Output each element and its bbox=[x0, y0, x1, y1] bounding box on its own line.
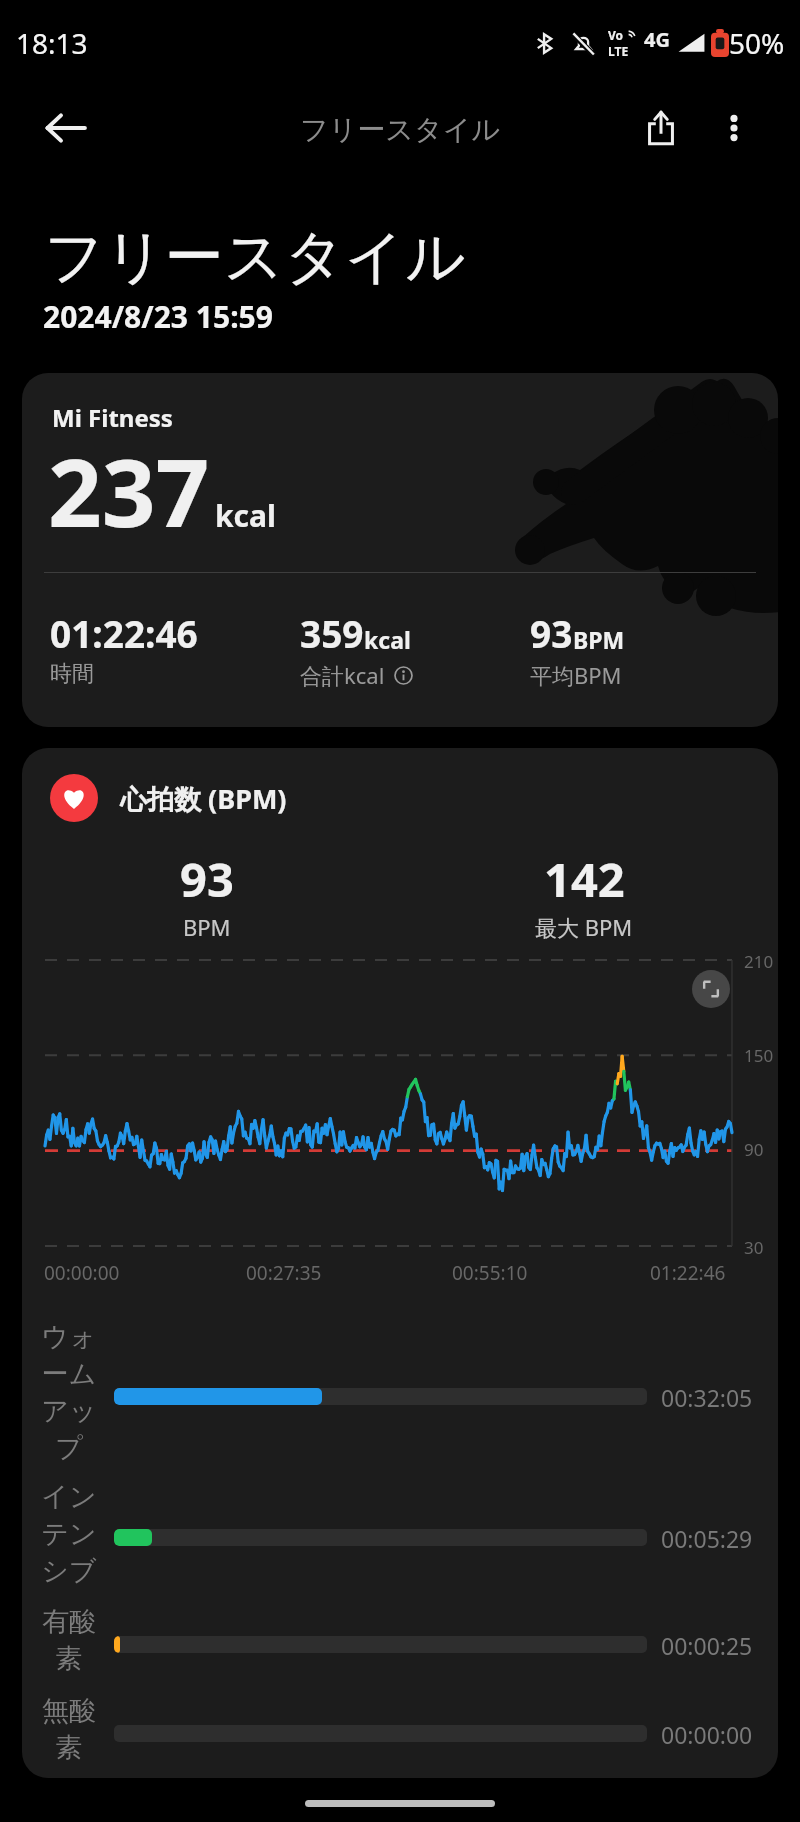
staticText: Vo bbox=[608, 27, 624, 43]
staticText: イン テン シブ bbox=[30, 1480, 108, 1588]
staticText: 00:32:05 bbox=[661, 1382, 753, 1413]
staticText: 4G bbox=[644, 26, 670, 53]
staticText: 01:22:46 bbox=[50, 608, 198, 658]
staticText: 00:00:00 bbox=[661, 1719, 753, 1750]
staticText: 00:55:10 bbox=[452, 1260, 528, 1286]
staticText: 237 bbox=[48, 427, 210, 555]
staticText: 無酸 素 bbox=[30, 1694, 108, 1765]
staticText: kcal bbox=[364, 624, 411, 655]
staticText: 心拍数 (BPM) bbox=[120, 780, 287, 817]
staticText: 93 bbox=[180, 847, 234, 911]
staticText: 00:27:35 bbox=[246, 1260, 322, 1286]
staticText: BPM bbox=[183, 912, 231, 942]
button[interactable]: More options bbox=[706, 100, 762, 156]
staticText: 50% bbox=[729, 24, 785, 62]
staticText: 00:00:25 bbox=[661, 1630, 753, 1661]
staticText: フリースタイル bbox=[300, 112, 500, 147]
staticText: 150 bbox=[744, 1044, 774, 1067]
button[interactable]: Fullscreen bbox=[692, 970, 730, 1008]
staticText: 2024/8/23 15:59 bbox=[43, 296, 273, 337]
staticText: BPM bbox=[573, 624, 625, 655]
staticText: Mi Fitness bbox=[52, 401, 173, 434]
staticText: 00:00:00 bbox=[44, 1260, 120, 1286]
staticText: 210 bbox=[744, 950, 774, 973]
staticText: ウォ ーム アッ プ bbox=[30, 1320, 108, 1465]
staticText: 00:05:29 bbox=[661, 1523, 753, 1554]
staticText: 30 bbox=[744, 1236, 764, 1259]
staticText: 01:22:46 bbox=[650, 1260, 726, 1286]
button[interactable]: 心拍数 (BPM) bbox=[22, 748, 778, 1778]
staticText: フリースタイル bbox=[44, 220, 466, 294]
button[interactable]: Mi Fitness bbox=[22, 373, 778, 727]
staticText: 18:13 bbox=[16, 24, 88, 62]
staticText: 90 bbox=[744, 1138, 764, 1161]
staticText: 平均BPM bbox=[530, 660, 622, 690]
staticText: 合計kcal bbox=[300, 660, 385, 690]
staticText: 359 bbox=[300, 608, 364, 658]
button[interactable]: Share bbox=[633, 100, 689, 156]
staticText: 142 bbox=[544, 847, 625, 911]
staticText: 有酸 素 bbox=[30, 1605, 108, 1676]
staticText: LTE bbox=[608, 43, 629, 59]
button[interactable]: Back bbox=[38, 100, 94, 156]
staticText: 93 bbox=[530, 608, 573, 658]
staticText: kcal bbox=[215, 495, 276, 536]
staticText: 最大 BPM bbox=[535, 912, 633, 942]
staticText: 時間 bbox=[50, 660, 94, 688]
